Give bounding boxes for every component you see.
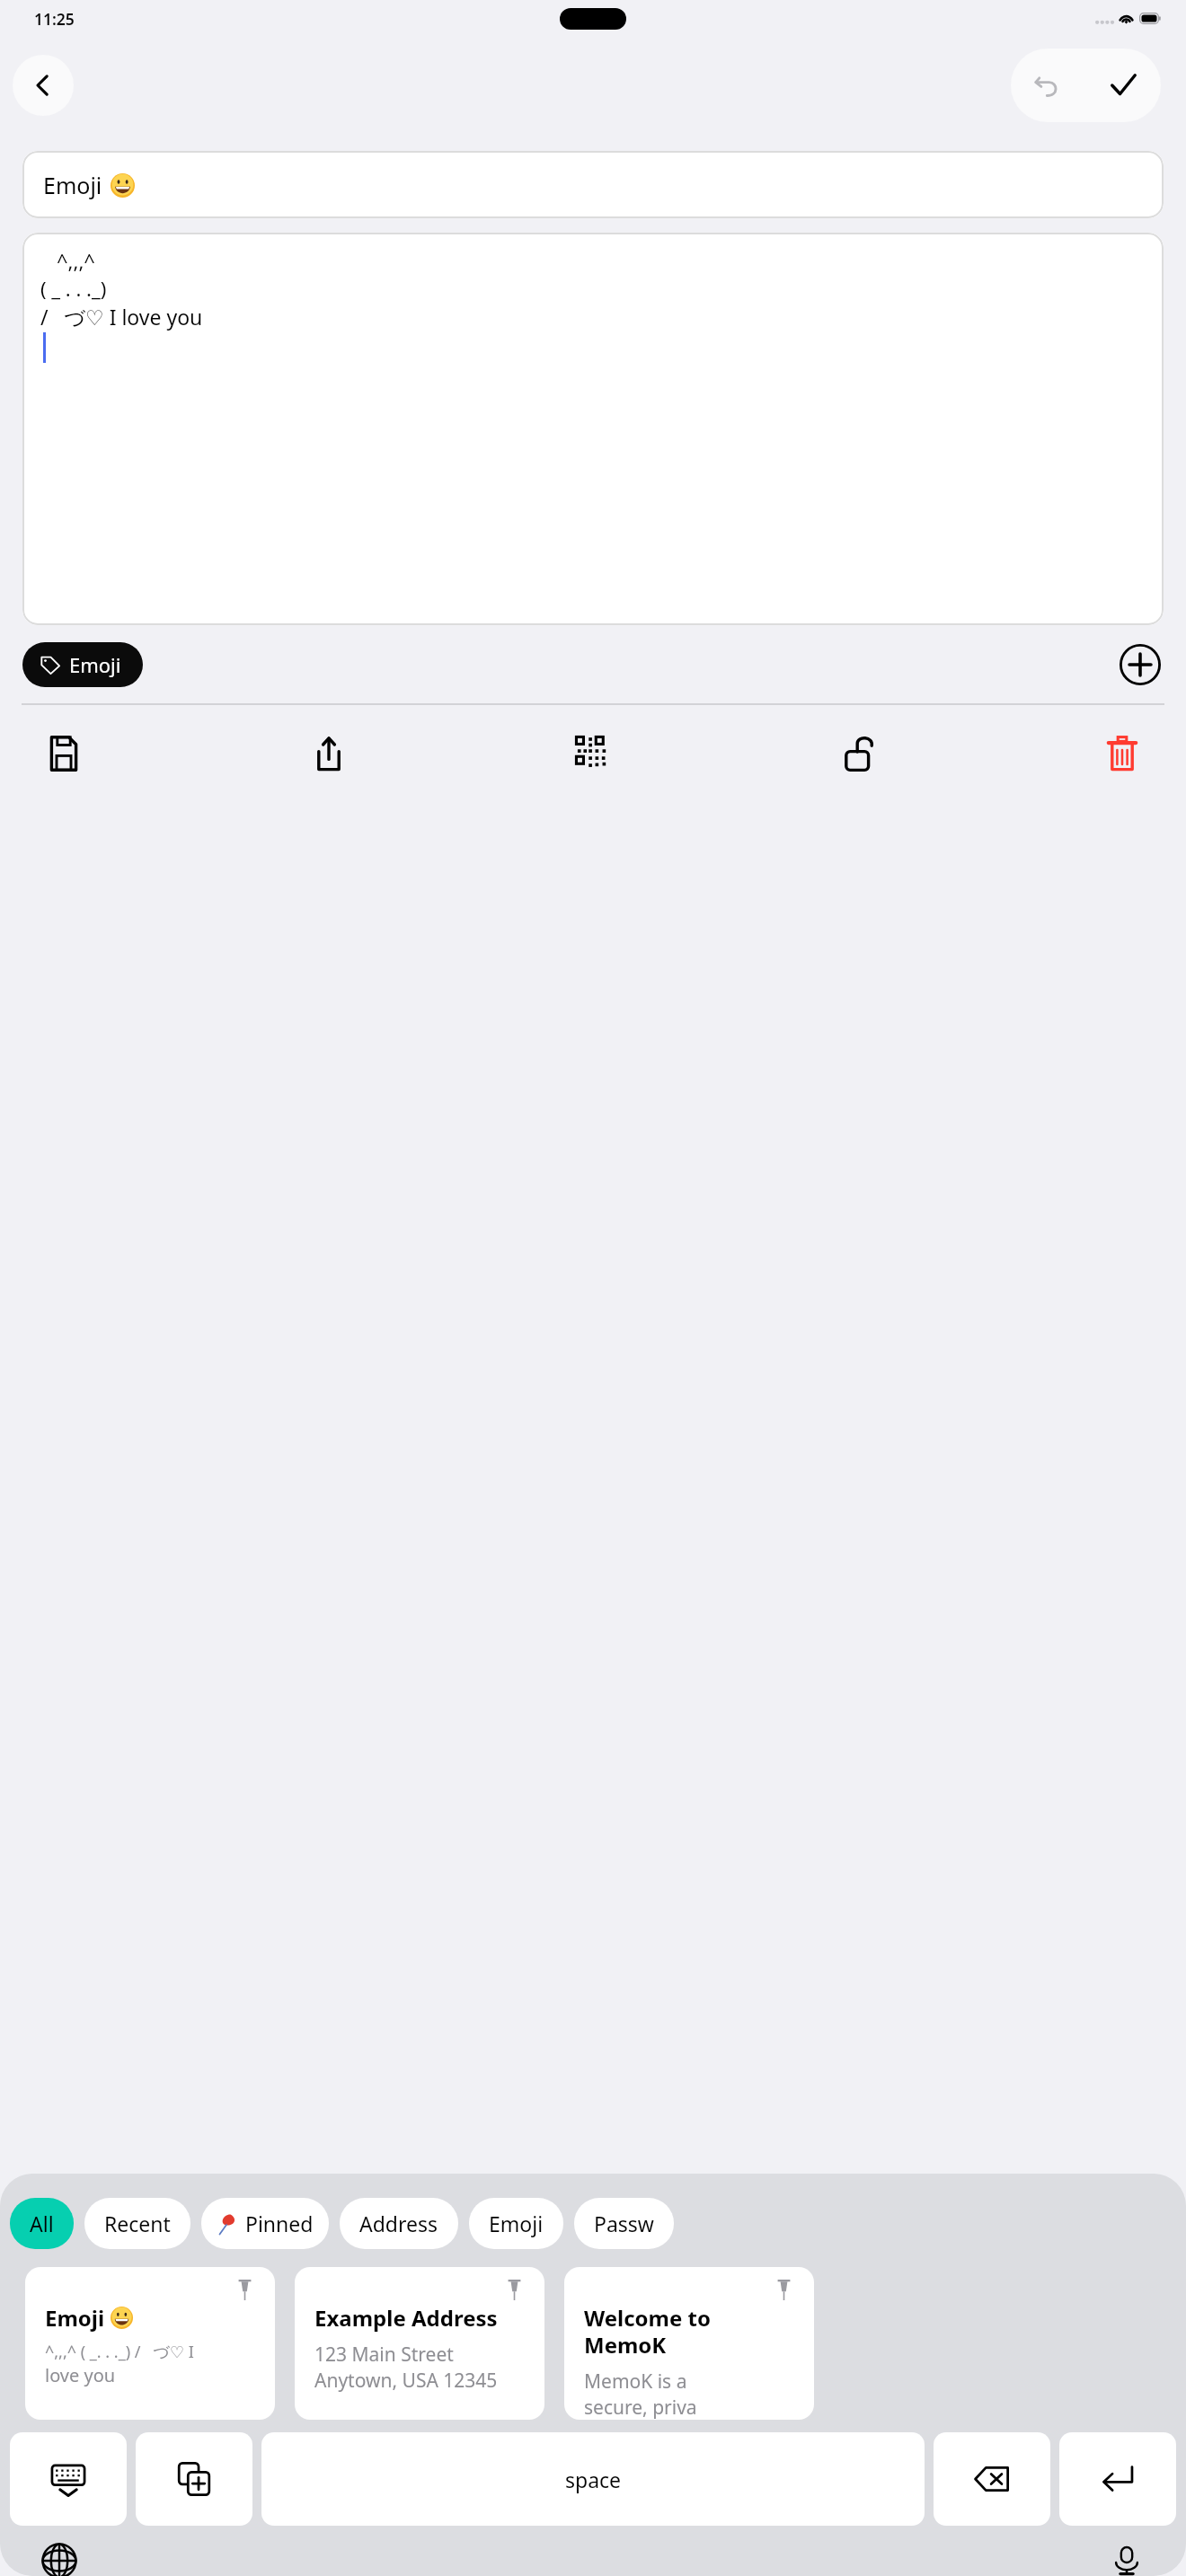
button[interactable]: Passw xyxy=(574,2198,674,2249)
button[interactable]: space xyxy=(261,2432,925,2526)
button[interactable]: Share xyxy=(290,715,367,792)
button[interactable]: Back xyxy=(13,55,74,116)
button[interactable]: Delete xyxy=(1084,715,1161,792)
button[interactable]: Recent xyxy=(84,2198,190,2249)
staticText: ^,,,^ xyxy=(57,247,95,274)
staticText: Recent xyxy=(104,2210,171,2237)
button[interactable]: Undo xyxy=(1011,49,1085,122)
button[interactable]: Address xyxy=(340,2198,458,2249)
staticText: / づ♡ I love you xyxy=(40,303,203,331)
button[interactable]: Add tag xyxy=(1117,642,1164,687)
staticText: 123 Main Street xyxy=(314,2342,454,2368)
button[interactable]: Hide keyboard xyxy=(10,2432,127,2526)
staticText: Pinned xyxy=(245,2210,314,2237)
button[interactable]: Emoji xyxy=(469,2198,563,2249)
staticText: space xyxy=(565,2466,622,2493)
button[interactable]: Emoji xyxy=(22,151,1164,218)
staticText: Example Address xyxy=(314,2303,498,2333)
button[interactable]: Unlock xyxy=(819,715,897,792)
button[interactable]: Pinned xyxy=(201,2198,329,2249)
staticText: Emoji xyxy=(43,170,102,200)
staticText: Address xyxy=(359,2210,438,2237)
button[interactable]: Welcome to MemoK xyxy=(564,2267,814,2420)
button[interactable]: Confirm xyxy=(1085,49,1161,122)
button[interactable]: Example Address xyxy=(295,2267,544,2420)
staticText: love you xyxy=(45,2363,116,2387)
button[interactable]: ^,,,^ xyxy=(22,233,1164,625)
button[interactable]: QR code xyxy=(554,715,632,792)
button[interactable]: Change language xyxy=(27,2545,92,2576)
button[interactable]: Save xyxy=(25,715,102,792)
staticText: Anytown, USA 12345 xyxy=(314,2368,498,2394)
staticText: ^,,,^ ( _. . ._) / づ♡ I xyxy=(45,2341,194,2363)
button[interactable]: All xyxy=(10,2198,74,2249)
button[interactable]: Return xyxy=(1059,2432,1176,2526)
button[interactable]: Emoji xyxy=(25,2267,275,2420)
staticText: Passw xyxy=(594,2210,654,2237)
staticText: Emoji xyxy=(45,2303,105,2333)
staticText: All xyxy=(30,2210,54,2237)
staticText: ( _ . . ._) xyxy=(40,275,107,302)
button[interactable]: Backspace xyxy=(934,2432,1050,2526)
staticText: Emoji xyxy=(69,651,121,678)
button[interactable]: Emoji xyxy=(22,642,143,687)
staticText: MemoK is a xyxy=(584,2369,687,2395)
staticText: secure, priva xyxy=(584,2395,697,2420)
staticText: Emoji xyxy=(489,2210,544,2237)
button[interactable]: New note xyxy=(136,2432,252,2526)
staticText: 11:25 xyxy=(34,8,75,30)
button[interactable]: Voice input xyxy=(1094,2545,1159,2576)
staticText: Welcome to MemoK xyxy=(584,2303,711,2360)
